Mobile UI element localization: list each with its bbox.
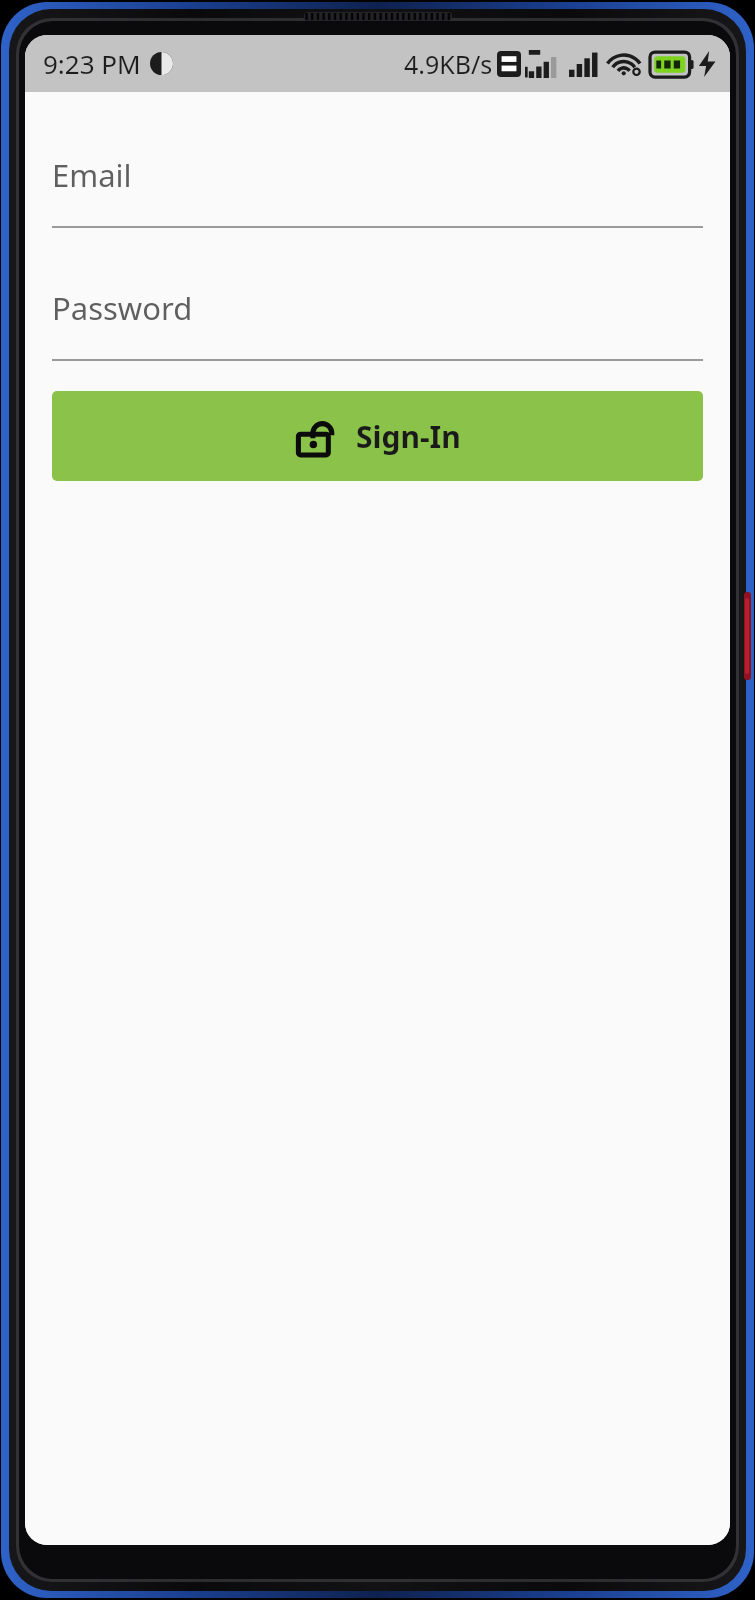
staticText: Email bbox=[52, 154, 132, 196]
staticText: Password bbox=[52, 287, 193, 329]
button[interactable]: Unlock bbox=[52, 391, 703, 481]
staticText: 4.9KB/s bbox=[404, 47, 493, 81]
button[interactable]: Password bbox=[52, 281, 703, 361]
staticText: 9:23 PM bbox=[43, 46, 141, 81]
button[interactable]: Email bbox=[52, 148, 703, 228]
staticText: Sign-In bbox=[356, 416, 461, 457]
other: Unlock bbox=[294, 414, 338, 458]
